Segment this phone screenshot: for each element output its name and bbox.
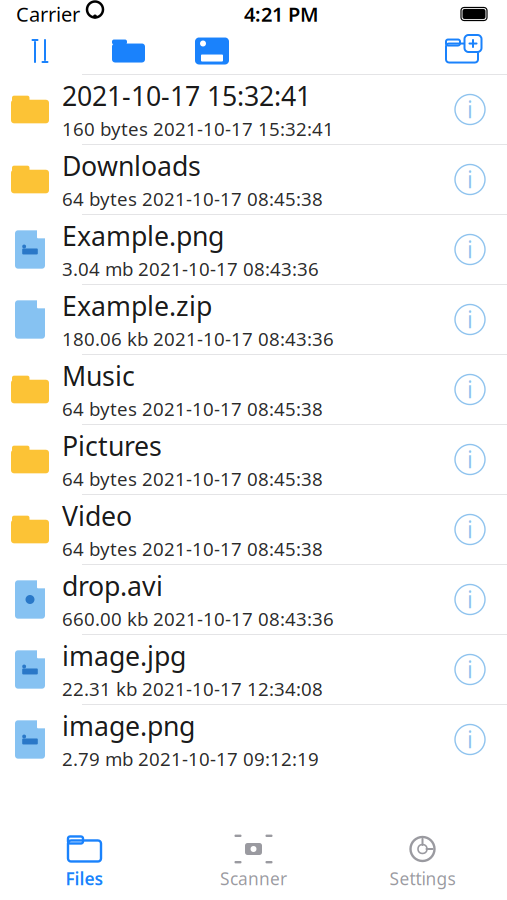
staticText: 64 bytes 2021-10-17 08:45:38: [62, 186, 323, 211]
staticText: 180.06 kb 2021-10-17 08:43:36: [62, 326, 334, 351]
staticText: 2.79 mb 2021-10-17 09:12:19: [62, 746, 319, 771]
button[interactable]: Info: [455, 444, 485, 474]
button[interactable]: Example.zip: [0, 285, 507, 355]
staticText: Carrier: [16, 1, 80, 27]
button[interactable]: Info: [455, 164, 485, 194]
button[interactable]: Sort: [26, 38, 54, 64]
staticText: 3.04 mb 2021-10-17 08:43:36: [62, 256, 319, 281]
button[interactable]: Video: [0, 495, 507, 565]
staticText: i: [467, 514, 473, 544]
staticText: 64 bytes 2021-10-17 08:45:38: [62, 466, 323, 491]
staticText: i: [467, 374, 473, 404]
button[interactable]: drop.avi: [0, 565, 507, 635]
staticText: 64 bytes 2021-10-17 08:45:38: [62, 396, 323, 421]
staticText: Example.png: [62, 218, 224, 253]
button[interactable]: Files: [0, 826, 169, 900]
staticText: drop.avi: [62, 568, 163, 603]
button[interactable]: image.png: [0, 705, 507, 775]
button[interactable]: Example.png: [0, 215, 507, 285]
button[interactable]: Info: [455, 304, 485, 334]
button[interactable]: Info: [455, 374, 485, 404]
staticText: Settings: [389, 867, 455, 890]
button[interactable]: New Folder: [443, 37, 481, 65]
staticText: i: [467, 234, 473, 264]
staticText: i: [467, 164, 473, 194]
button[interactable]: image.jpg: [0, 635, 507, 705]
staticText: Pictures: [62, 428, 162, 463]
button[interactable]: Photos: [195, 37, 229, 64]
staticText: 4:21 PM: [244, 1, 319, 27]
staticText: Video: [62, 498, 132, 533]
staticText: 2021-10-17 15:32:41: [62, 78, 311, 113]
staticText: i: [467, 654, 473, 684]
button[interactable]: 2021-10-17 15:32:41: [0, 75, 507, 145]
staticText: 160 bytes 2021-10-17 15:32:41: [62, 116, 334, 141]
staticText: Downloads: [62, 148, 201, 183]
staticText: i: [467, 444, 473, 474]
button[interactable]: Info: [455, 514, 485, 544]
staticText: i: [467, 94, 473, 124]
staticText: i: [467, 304, 473, 334]
staticText: Files: [65, 867, 103, 890]
button[interactable]: Info: [455, 654, 485, 684]
staticText: 64 bytes 2021-10-17 08:45:38: [62, 536, 323, 561]
staticText: Scanner: [220, 867, 287, 890]
button[interactable]: Info: [455, 234, 485, 264]
button[interactable]: Info: [455, 584, 485, 614]
button[interactable]: Settings: [338, 826, 507, 900]
staticText: image.jpg: [62, 638, 186, 673]
staticText: Music: [62, 358, 135, 393]
button[interactable]: Info: [455, 724, 485, 754]
staticText: i: [467, 724, 473, 754]
button[interactable]: Downloads: [0, 145, 507, 215]
button[interactable]: Music: [0, 355, 507, 425]
button[interactable]: Scanner: [169, 826, 338, 900]
button[interactable]: Folders: [112, 39, 145, 63]
staticText: 660.00 kb 2021-10-17 08:43:36: [62, 606, 334, 631]
staticText: i: [467, 584, 473, 614]
button[interactable]: Info: [455, 94, 485, 124]
button[interactable]: Pictures: [0, 425, 507, 495]
staticText: Example.zip: [62, 288, 212, 323]
staticText: 22.31 kb 2021-10-17 12:34:08: [62, 676, 323, 701]
staticText: image.png: [62, 708, 195, 743]
